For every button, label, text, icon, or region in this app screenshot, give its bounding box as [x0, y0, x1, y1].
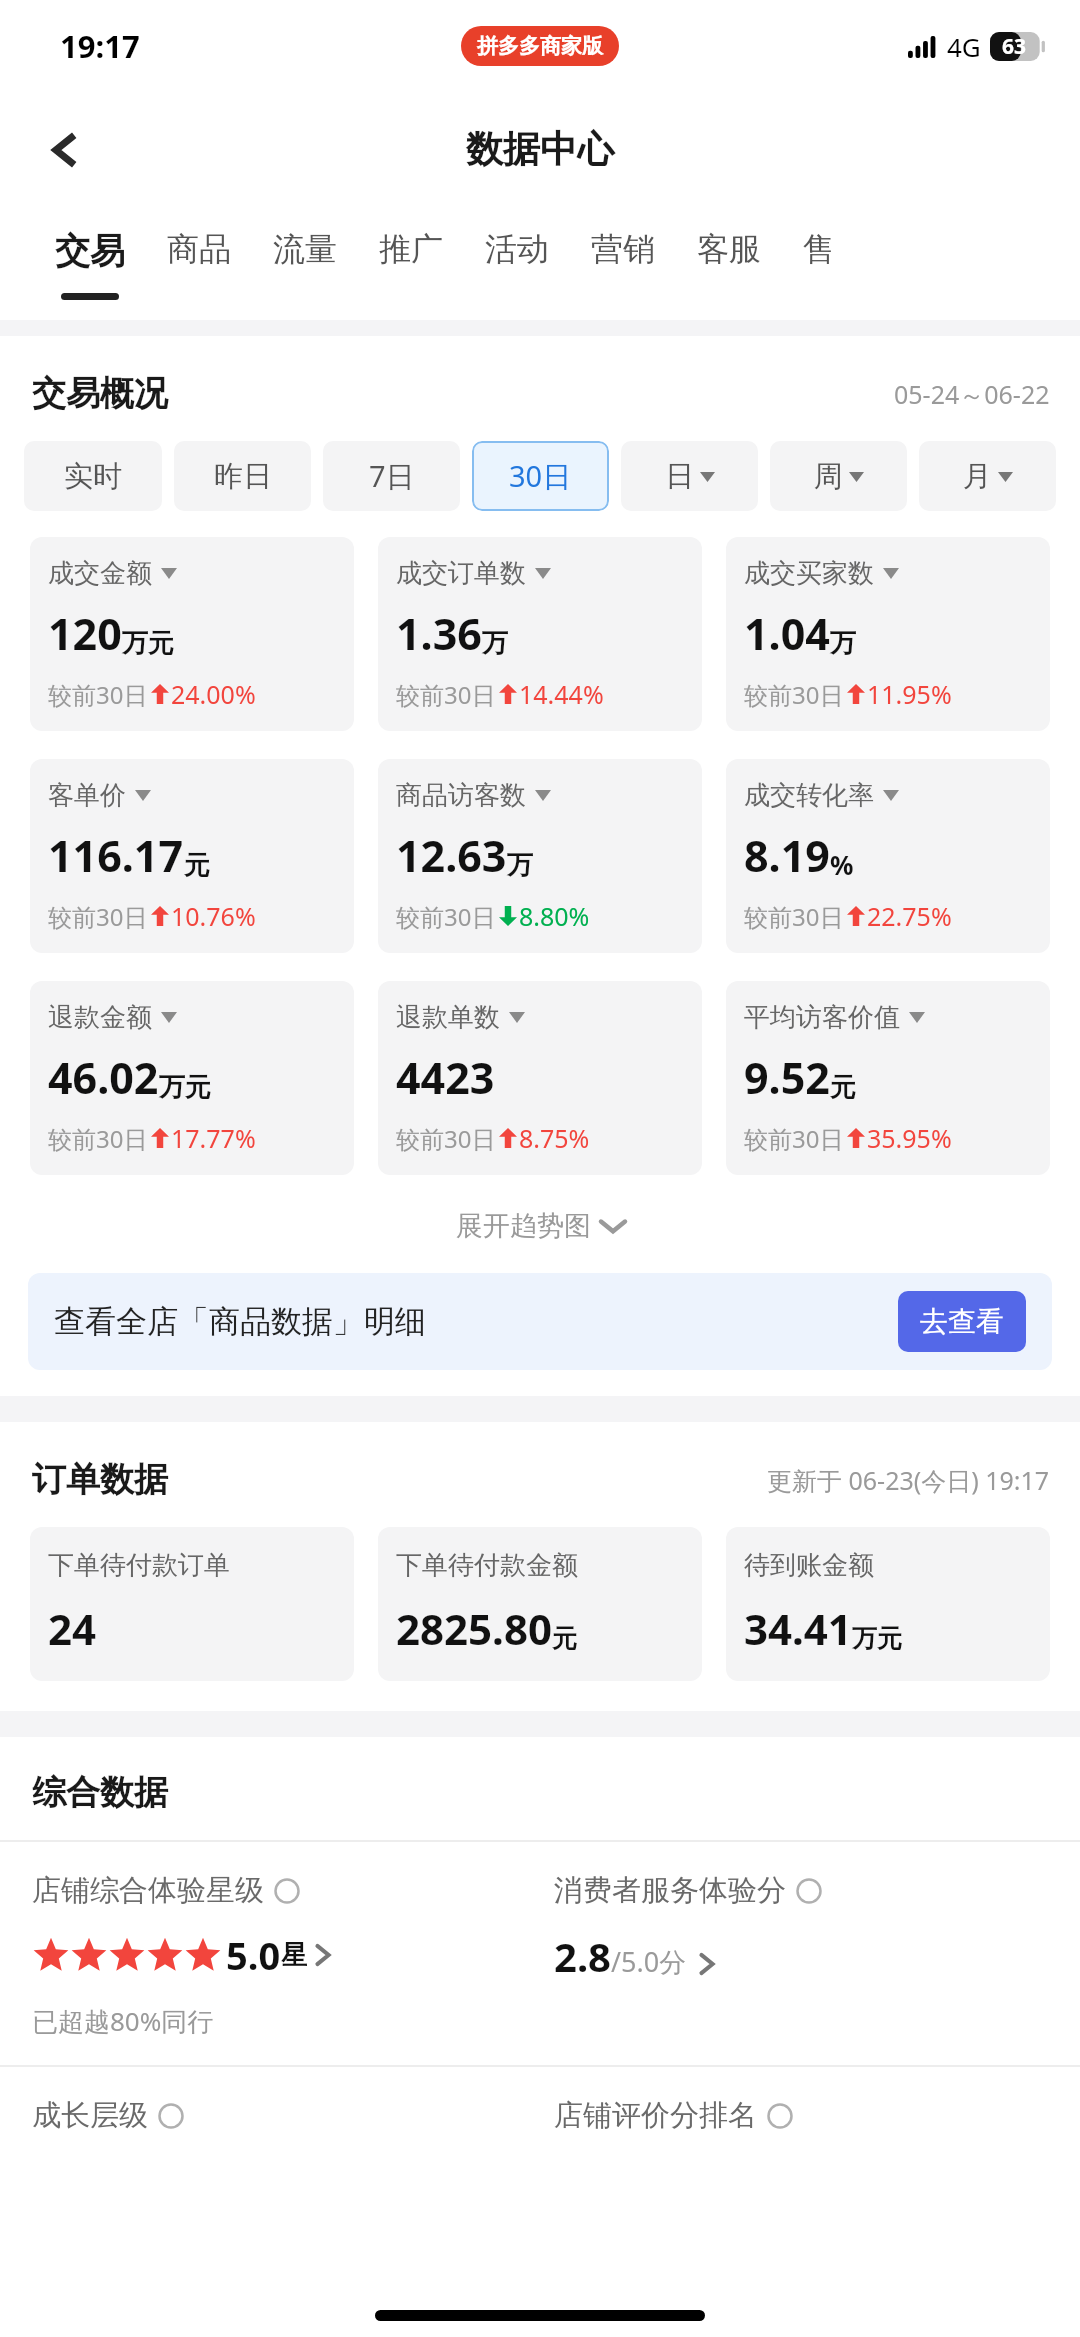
staticText: 5.0 — [226, 1929, 281, 1981]
button[interactable]: 退款金额 — [30, 981, 354, 1175]
staticText: 商品访客数 — [396, 779, 526, 812]
staticText: 成交订单数 — [396, 557, 526, 590]
button[interactable]: 推广 — [358, 207, 464, 289]
staticText: 12.63 — [396, 826, 507, 885]
staticText: 昨日 — [214, 458, 272, 495]
button[interactable]: 店铺综合体验星级 — [32, 1872, 540, 2039]
staticText: 店铺评价分排名 — [554, 2097, 757, 2134]
button[interactable]: 商品 — [146, 207, 252, 289]
staticText: 较前30日 — [48, 1122, 148, 1155]
staticText: 120 — [48, 604, 122, 663]
button[interactable]: 店铺评价分排名 — [554, 2097, 1080, 2134]
staticText: 较前30日 — [396, 1122, 496, 1155]
staticText: 成交买家数 — [744, 557, 874, 590]
button[interactable]: 昨日 — [174, 441, 311, 511]
staticText: 成长层级 — [32, 2097, 148, 2134]
button[interactable]: 成长层级 — [32, 2097, 540, 2134]
staticText: 去查看 — [920, 1304, 1004, 1339]
button[interactable]: 下单待付款金额 — [378, 1527, 702, 1681]
staticText: 19:17 — [60, 25, 140, 67]
staticText: 拼多多商家版 — [477, 33, 603, 59]
staticText: /5.0分 — [611, 1943, 687, 1980]
button[interactable]: 成交买家数 — [726, 537, 1050, 731]
button[interactable]: 7日 — [323, 441, 460, 511]
staticText: 成交转化率 — [744, 779, 874, 812]
staticText: 万 — [482, 627, 508, 660]
staticText: 较前30日 — [48, 900, 148, 933]
staticText: 4G — [947, 29, 981, 64]
button[interactable]: 30日 — [472, 441, 609, 511]
button[interactable]: 月 — [919, 441, 1056, 511]
staticText: 35.95% — [867, 1121, 952, 1155]
staticText: 8.19 — [744, 826, 830, 885]
staticText: 待到账金额 — [744, 1549, 874, 1582]
button[interactable]: 查看全店「商品数据」明细 — [28, 1273, 1052, 1370]
staticText: 1.04 — [744, 604, 830, 663]
staticText: 元 — [830, 1071, 856, 1104]
staticText: 消费者服务体验分 — [554, 1872, 786, 1909]
staticText: 更新于 06-23(今日) 19:17 — [767, 1463, 1050, 1497]
staticText: 万元 — [852, 1623, 902, 1654]
staticText: 日 — [665, 458, 694, 495]
button[interactable]: 成交金额 — [30, 537, 354, 731]
staticText: 周 — [814, 458, 843, 495]
button[interactable]: 待到账金额 — [726, 1527, 1050, 1681]
staticText: 2.8 — [554, 1929, 611, 1983]
button[interactable]: 客服 — [676, 207, 782, 289]
staticText: 实时 — [64, 458, 122, 495]
staticText: 34.41 — [744, 1600, 852, 1657]
staticText: 成交金额 — [48, 557, 152, 590]
staticText: 7日 — [369, 456, 415, 496]
staticText: 客服 — [697, 229, 761, 269]
staticText: 交易概况 — [32, 372, 168, 415]
staticText: 较前30日 — [744, 900, 844, 933]
staticText: 05-24～06-22 — [894, 377, 1050, 411]
button[interactable]: 展开趋势图 — [0, 1209, 1080, 1243]
staticText: 14.44% — [519, 677, 604, 711]
staticText: 营销 — [591, 229, 655, 269]
staticText: 推广 — [379, 229, 443, 269]
button[interactable]: 商品访客数 — [378, 759, 702, 953]
button[interactable]: 客单价 — [30, 759, 354, 953]
staticText: 较前30日 — [744, 1122, 844, 1155]
button[interactable]: 日 — [621, 441, 758, 511]
staticText: 9.52 — [744, 1048, 830, 1107]
staticText: 116.17 — [48, 826, 184, 885]
staticText: 展开趋势图 — [456, 1209, 591, 1243]
button[interactable]: 成交订单数 — [378, 537, 702, 731]
staticText: 月 — [963, 458, 992, 495]
staticText: 元 — [552, 1623, 577, 1654]
staticText: 17.77% — [171, 1121, 256, 1155]
staticText: 活动 — [485, 229, 549, 269]
staticText: 24.00% — [171, 677, 256, 711]
staticText: 1.36 — [396, 604, 482, 663]
staticText: 综合数据 — [32, 1771, 168, 1814]
button[interactable]: 去查看 — [898, 1291, 1026, 1352]
button[interactable]: 周 — [770, 441, 907, 511]
button[interactable]: 平均访客价值 — [726, 981, 1050, 1175]
staticText: 8.75% — [519, 1121, 590, 1155]
button[interactable]: Back — [26, 112, 102, 188]
button[interactable]: 交易 — [34, 207, 146, 300]
staticText: 订单数据 — [32, 1458, 168, 1501]
staticText: 46.02 — [48, 1048, 159, 1107]
staticText: 万元 — [159, 1071, 211, 1104]
staticText: 售 — [803, 229, 835, 269]
button[interactable]: 消费者服务体验分 — [554, 1872, 1080, 1983]
staticText: 11.95% — [867, 677, 952, 711]
button[interactable]: 下单待付款订单 — [30, 1527, 354, 1681]
staticText: % — [830, 847, 854, 882]
staticText: 较前30日 — [744, 678, 844, 711]
button[interactable]: 营销 — [570, 207, 676, 289]
staticText: 退款单数 — [396, 1001, 500, 1034]
button[interactable]: 实时 — [24, 441, 162, 511]
button[interactable]: 退款单数 — [378, 981, 702, 1175]
button[interactable]: 售 — [782, 207, 856, 289]
button[interactable]: 流量 — [252, 207, 358, 289]
staticText: 平均访客价值 — [744, 1001, 900, 1034]
button[interactable]: 活动 — [464, 207, 570, 289]
button[interactable]: 成交转化率 — [726, 759, 1050, 953]
staticText: 店铺综合体验星级 — [32, 1872, 264, 1909]
staticText: 8.80% — [519, 899, 590, 933]
staticText: 较前30日 — [396, 678, 496, 711]
